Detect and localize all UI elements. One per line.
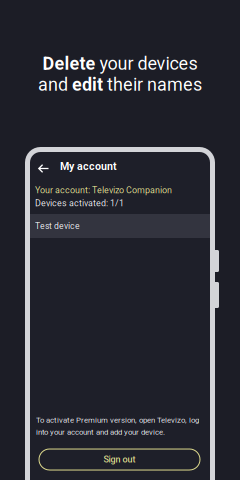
staticText: Delete your devices [42,53,197,74]
staticText: Test device [35,221,80,231]
button[interactable]: Test device [30,214,210,238]
staticText: Sign out [103,454,135,465]
staticText: into your account and add your device. [36,427,165,436]
staticText: Devices activated: 1/1 [35,198,124,208]
staticText: and edit their names [38,74,202,95]
staticText: Your account: Televizo Companion [35,185,172,195]
button[interactable]: Back [32,158,55,179]
staticText: My account [60,160,117,172]
button[interactable]: Sign out [39,449,200,470]
staticText: To activate Premium version, open Televi… [36,415,199,424]
